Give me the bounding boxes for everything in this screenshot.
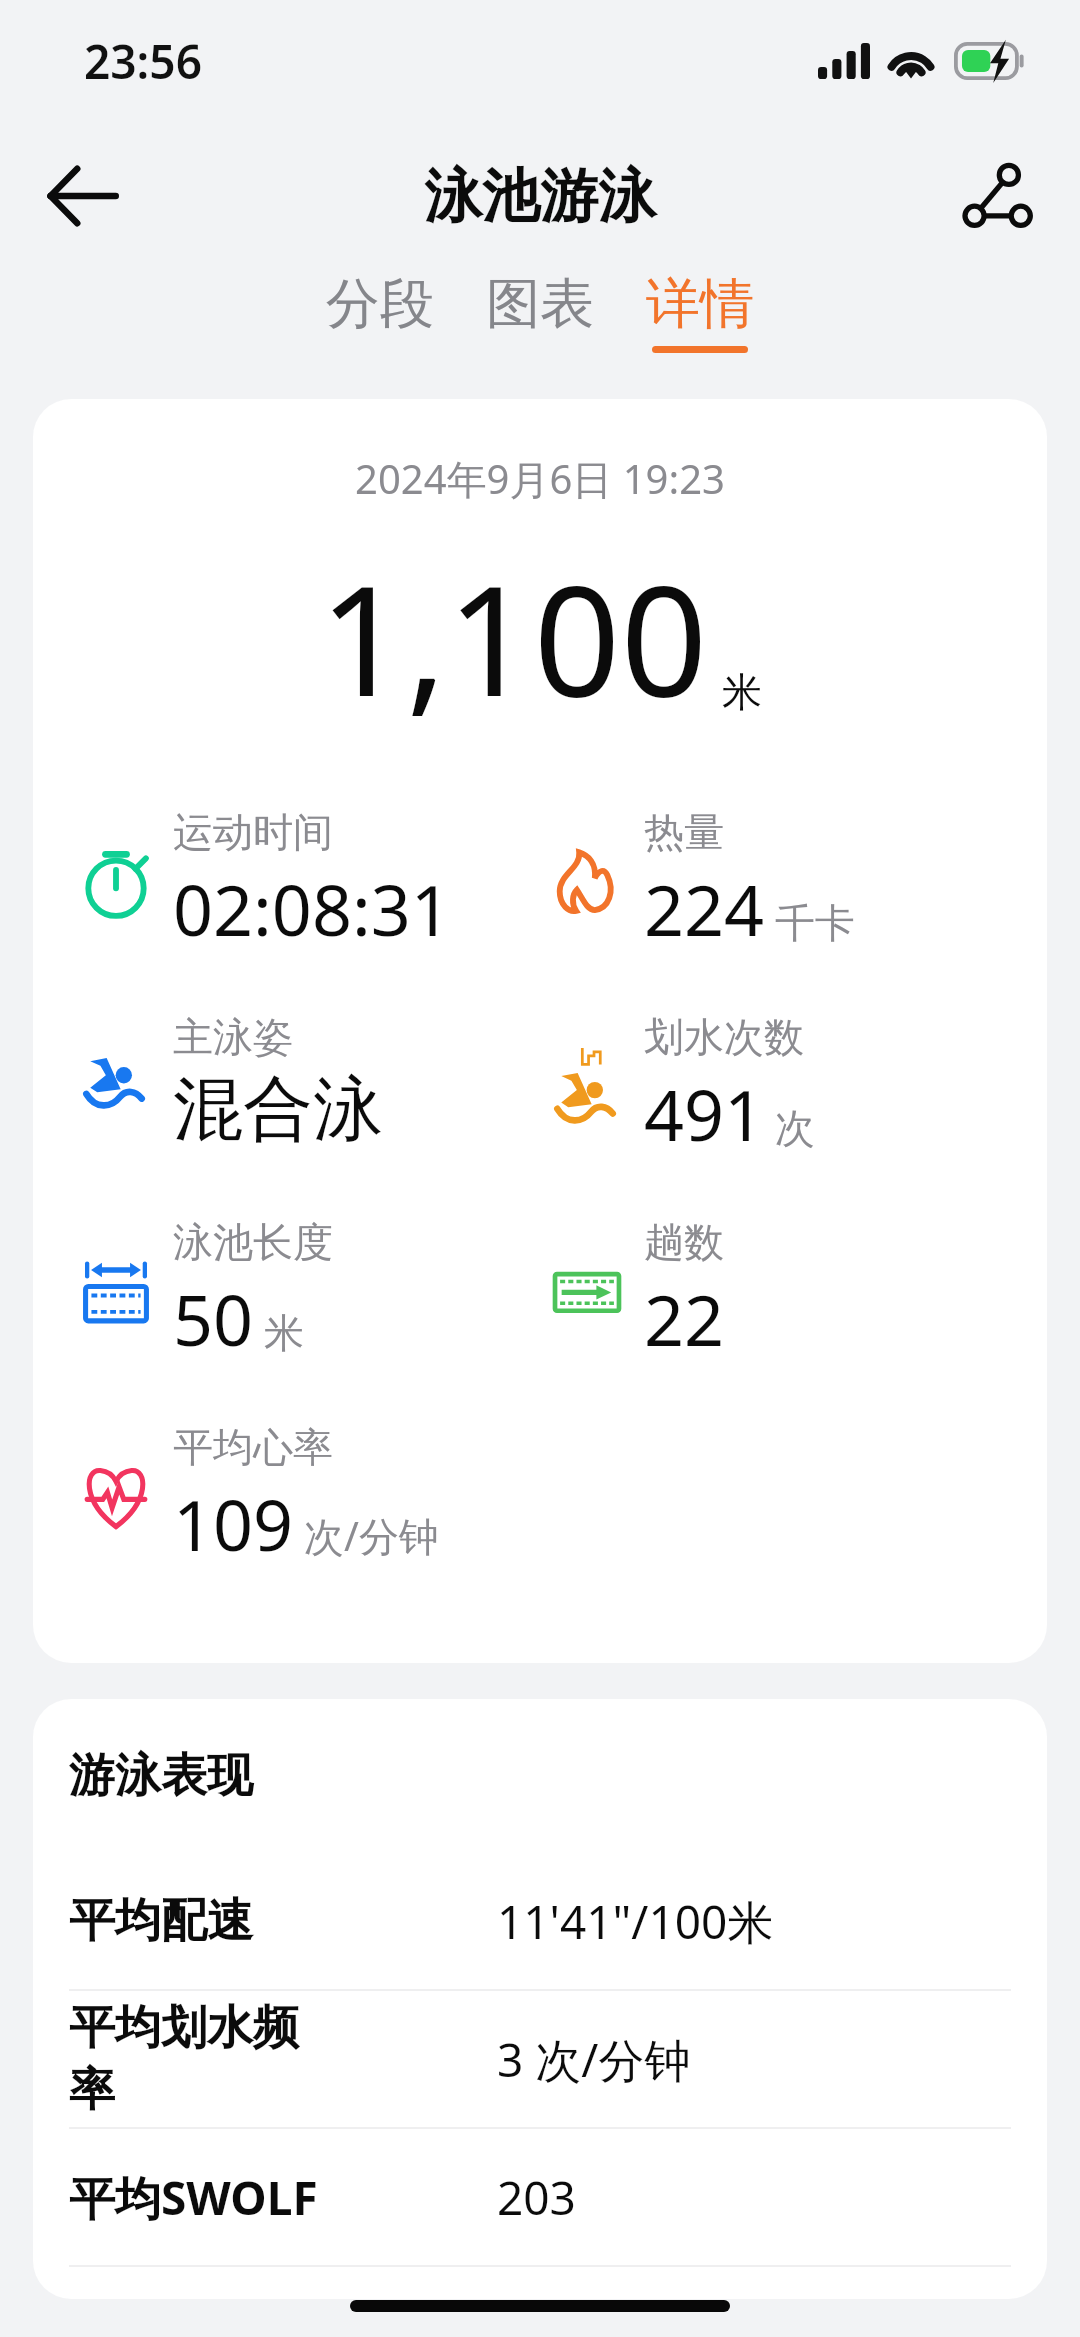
staticText: 趟数 (644, 1217, 724, 1267)
staticText: 图表 (486, 270, 594, 338)
staticText: 3 次/分钟 (497, 2028, 691, 2091)
staticText: 泳池长度 (173, 1217, 333, 1267)
staticText: 米 (264, 1308, 304, 1358)
staticText: 详情 (646, 270, 754, 338)
staticText: 划水次数 (644, 1012, 804, 1062)
staticText: 50 (173, 1271, 254, 1366)
staticText: 米 (722, 667, 762, 717)
staticText: 23:56 (84, 30, 202, 93)
staticText: 491 (644, 1066, 765, 1161)
button[interactable]: 图表 (466, 270, 614, 353)
button[interactable]: Back (22, 135, 144, 257)
button[interactable]: 分段 (306, 270, 454, 353)
staticText: 109 (173, 1476, 294, 1571)
staticText: 22 (644, 1271, 725, 1366)
staticText: 游泳表现 (69, 1747, 253, 1805)
staticText: 平均心率 (173, 1422, 333, 1472)
button[interactable]: 平均配速 (33, 1853, 1047, 1989)
button[interactable]: 平均SWOLF (33, 2129, 1047, 2265)
staticText: 11'41"/100米 (497, 1890, 774, 1953)
staticText: 02:08:31 (173, 861, 451, 956)
staticText: 平均划水频率 (69, 1999, 329, 2119)
staticText: 千卡 (775, 898, 855, 948)
staticText: 2024年9月6日 19:23 (33, 451, 1047, 506)
staticText: 平均SWOLF (69, 2166, 329, 2229)
button[interactable]: 详情 (626, 270, 774, 353)
staticText: 运动时间 (173, 807, 333, 857)
button[interactable]: Share (942, 141, 1052, 251)
staticText: 混合泳 (173, 1066, 383, 1154)
staticText: 1,100 (319, 534, 708, 741)
staticText: 次 (775, 1103, 815, 1153)
staticText: 平均配速 (69, 1892, 329, 1950)
staticText: 203 (497, 2166, 576, 2229)
staticText: 主泳姿 (173, 1012, 293, 1062)
button[interactable]: 平均划水频率 (33, 1991, 1047, 2127)
staticText: 分段 (326, 270, 434, 338)
staticText: 热量 (644, 807, 724, 857)
staticText: 次/分钟 (304, 1508, 439, 1563)
staticText: 224 (644, 861, 765, 956)
staticText: 泳池游泳 (424, 160, 656, 233)
